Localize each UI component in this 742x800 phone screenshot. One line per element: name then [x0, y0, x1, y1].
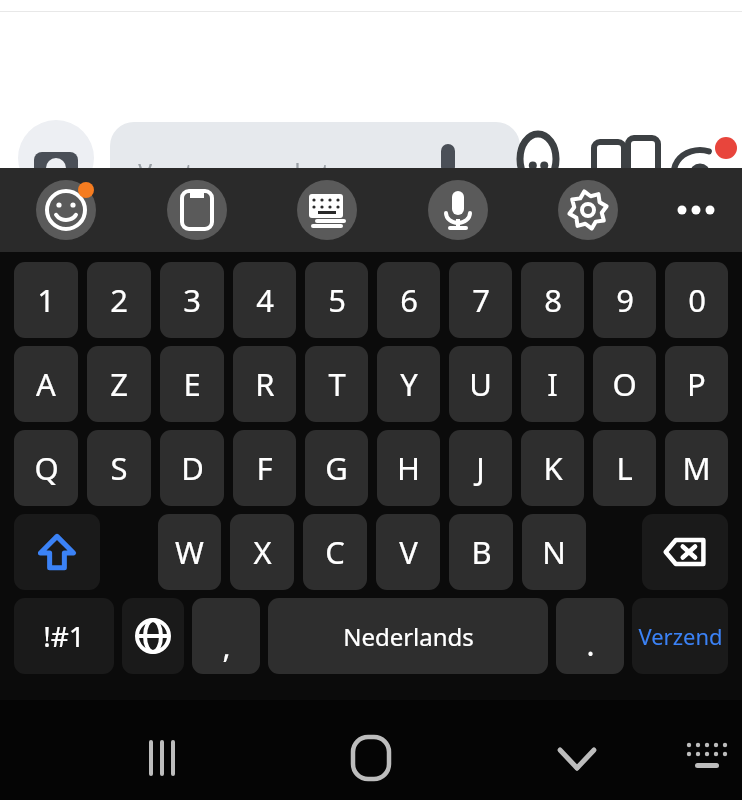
staticText: U	[469, 363, 492, 405]
button[interactable]: Settings	[558, 180, 618, 240]
button[interactable]: 7	[449, 262, 512, 338]
button[interactable]: 0	[665, 262, 728, 338]
button[interactable]: 1	[14, 262, 78, 338]
staticText: V	[399, 531, 418, 573]
staticText: .	[586, 624, 595, 665]
button[interactable]: P	[665, 346, 728, 422]
staticText: J	[476, 447, 485, 489]
staticText: I	[547, 363, 558, 405]
staticText: !#1	[43, 617, 85, 655]
button[interactable]: !#1	[14, 598, 114, 674]
button[interactable]: Camera	[18, 120, 94, 196]
staticText: O	[612, 363, 637, 405]
staticText: L	[616, 447, 633, 489]
button[interactable]: Effects	[668, 124, 726, 182]
staticText: D	[181, 447, 204, 489]
staticText: Y	[400, 363, 418, 405]
button[interactable]: K	[521, 430, 584, 506]
button[interactable]: T	[305, 346, 368, 422]
button[interactable]: J	[449, 430, 512, 506]
button[interactable]: V	[376, 514, 440, 590]
button[interactable]: Clipboard	[167, 180, 227, 240]
button[interactable]: Z	[87, 346, 151, 422]
staticText: F	[256, 447, 273, 489]
button[interactable]: Sticker	[512, 128, 564, 180]
staticText: 8	[544, 279, 562, 321]
button[interactable]: L	[593, 430, 656, 506]
staticText: 4	[256, 279, 274, 321]
button[interactable]: 6	[377, 262, 440, 338]
button[interactable]: M	[665, 430, 728, 506]
button[interactable]: Keyboard modes	[297, 180, 357, 240]
staticText: Verstuur een chat	[138, 156, 330, 187]
staticText: 1	[37, 279, 55, 321]
button[interactable]: U	[449, 346, 512, 422]
staticText: H	[397, 447, 420, 489]
button[interactable]: Keyboard layout	[678, 726, 736, 784]
button[interactable]: .	[556, 598, 624, 674]
button[interactable]: B	[449, 514, 513, 590]
staticText: Verzend	[638, 621, 723, 651]
button[interactable]: X	[230, 514, 294, 590]
staticText: 2	[110, 279, 128, 321]
button[interactable]: Hide keyboard	[543, 724, 611, 792]
staticText: A	[36, 363, 56, 405]
button[interactable]: R	[233, 346, 296, 422]
staticText: X	[253, 531, 272, 573]
staticText: R	[255, 363, 275, 405]
staticText: N	[542, 531, 566, 573]
staticText: Nederlands	[343, 620, 474, 653]
button[interactable]: H	[377, 430, 440, 506]
button[interactable]: O	[593, 346, 656, 422]
button[interactable]: A	[14, 346, 78, 422]
button[interactable]: I	[521, 346, 584, 422]
button[interactable]: Y	[377, 346, 440, 422]
button[interactable]: More options	[666, 180, 726, 240]
button[interactable]: Q	[14, 430, 78, 506]
staticText: C	[325, 531, 345, 573]
button[interactable]: G	[305, 430, 368, 506]
button[interactable]: Voice	[425, 130, 471, 176]
button[interactable]: Backspace	[642, 514, 728, 590]
button[interactable]: F	[233, 430, 296, 506]
button[interactable]: Recent apps	[128, 724, 196, 792]
button[interactable]: 4	[233, 262, 296, 338]
button[interactable]: C	[303, 514, 367, 590]
button[interactable]: N	[522, 514, 586, 590]
staticText: S	[110, 447, 128, 489]
staticText: 0	[688, 279, 706, 321]
staticText: G	[325, 447, 348, 489]
button[interactable]: S	[87, 430, 151, 506]
button[interactable]: Nederlands	[268, 598, 548, 674]
button[interactable]: 5	[305, 262, 368, 338]
button[interactable]: 2	[87, 262, 151, 338]
staticText: Q	[34, 447, 59, 489]
staticText: K	[543, 447, 563, 489]
staticText: Z	[110, 363, 128, 405]
staticText: 9	[616, 279, 634, 321]
button[interactable]: D	[160, 430, 224, 506]
button[interactable]: Home	[337, 724, 405, 792]
button[interactable]: ,	[192, 598, 260, 674]
button[interactable]: Emoji	[36, 180, 96, 240]
staticText: ,	[222, 626, 231, 667]
button[interactable]: Verzend	[632, 598, 728, 674]
staticText: 6	[400, 279, 418, 321]
button[interactable]: Shift	[14, 514, 100, 590]
button[interactable]: Voice input	[428, 180, 488, 240]
button[interactable]: Verstuur een chat	[110, 122, 520, 192]
staticText: 5	[328, 279, 346, 321]
button[interactable]: GIF	[588, 128, 644, 184]
staticText: 3	[183, 279, 201, 321]
staticText: B	[471, 531, 492, 573]
staticText: M	[682, 447, 711, 489]
button[interactable]: 3	[160, 262, 224, 338]
button[interactable]: Change language	[122, 598, 184, 674]
button[interactable]: E	[160, 346, 224, 422]
staticText: E	[183, 363, 201, 405]
button[interactable]: 8	[521, 262, 584, 338]
staticText: P	[687, 363, 706, 405]
button[interactable]: W	[158, 514, 221, 590]
button[interactable]: 9	[593, 262, 656, 338]
staticText: W	[175, 531, 204, 573]
